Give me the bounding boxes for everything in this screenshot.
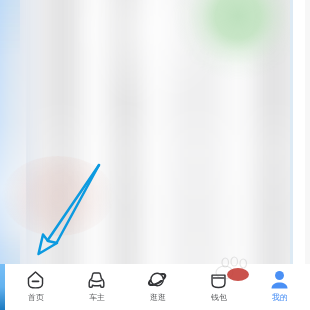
button[interactable]: 我的 bbox=[249, 264, 310, 310]
staticText: 我的 bbox=[272, 292, 288, 302]
staticText: 逛逛 bbox=[150, 292, 166, 302]
staticText: 车主 bbox=[89, 292, 105, 302]
button[interactable]: 逛逛 bbox=[127, 264, 188, 310]
staticText: 首页 bbox=[28, 292, 44, 302]
button[interactable]: 首页 bbox=[5, 264, 66, 310]
button[interactable]: 车主 bbox=[66, 264, 127, 310]
button[interactable]: 钱包 bbox=[188, 264, 249, 310]
staticText: 钱包 bbox=[211, 292, 227, 302]
